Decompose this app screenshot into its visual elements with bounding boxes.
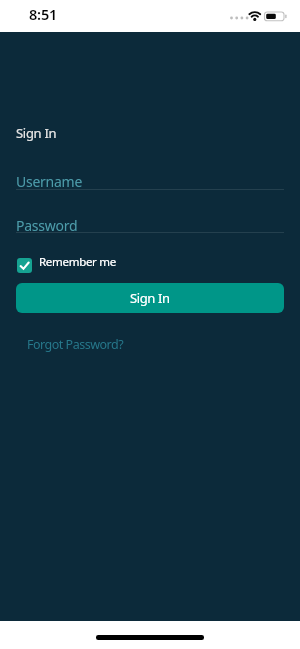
staticText: Sign In [16, 124, 57, 142]
button[interactable]: Forgot Password? [27, 336, 124, 353]
button[interactable]: Sign In [16, 283, 284, 313]
staticText: 8:51 [29, 4, 58, 24]
button[interactable]: Password [16, 216, 284, 233]
button[interactable]: Username [16, 172, 284, 190]
staticText: Sign In [130, 289, 170, 307]
staticText: Username [16, 172, 83, 190]
staticText: Password [16, 216, 78, 233]
button[interactable]: Remember me [17, 258, 117, 273]
staticText: Remember me [39, 254, 116, 269]
